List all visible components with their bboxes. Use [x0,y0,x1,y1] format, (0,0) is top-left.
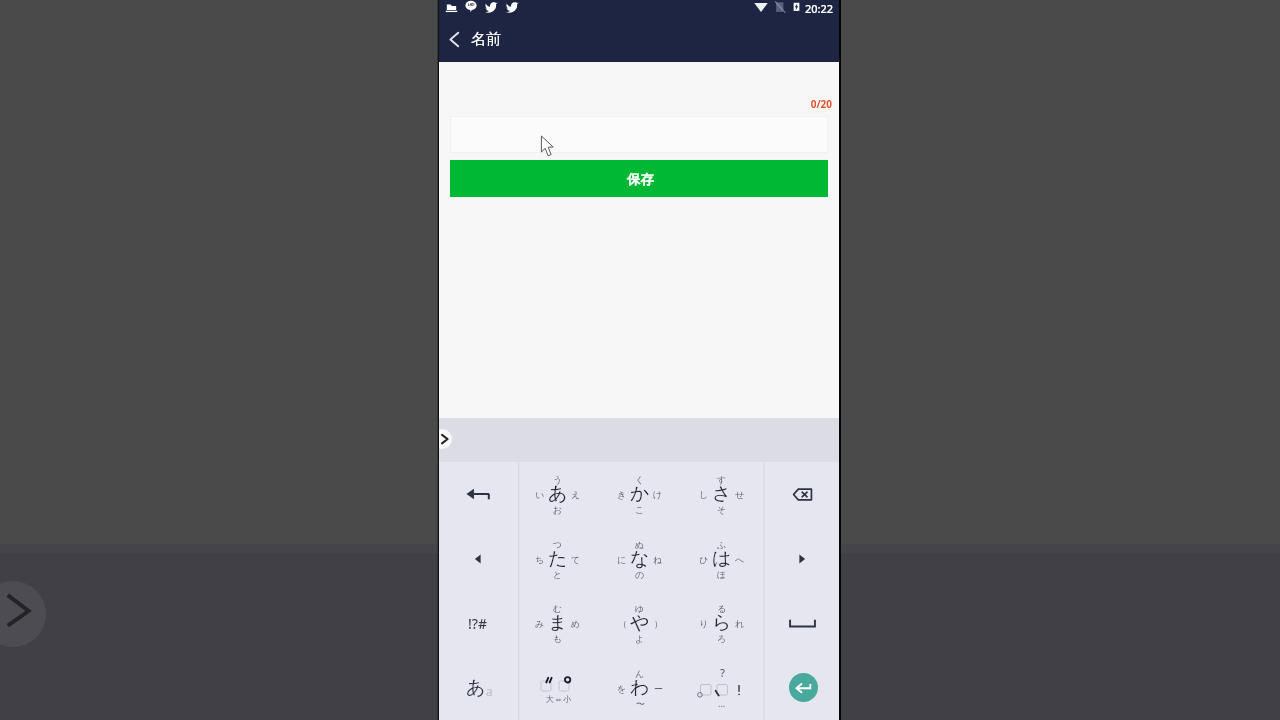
staticText: 大 [546,694,554,704]
staticText: ふ [717,539,727,550]
button[interactable]: Next [0,581,46,647]
staticText: き [617,489,627,500]
button[interactable]: !?# [439,591,517,655]
staticText: た [548,547,568,571]
staticText: に [617,554,627,565]
button[interactable] [450,116,828,153]
staticText: ね [653,554,663,565]
staticText: め [571,618,581,629]
button[interactable]: な [599,527,681,591]
staticText: を [617,683,627,694]
staticText: （ [618,618,627,629]
staticText: え [571,489,581,500]
button[interactable]: さ [681,462,763,526]
button[interactable]: Punctuation [681,656,763,720]
staticText: る [717,603,727,614]
staticText: む [553,603,563,614]
staticText: ... [718,697,726,709]
staticText: ひ [699,554,709,565]
staticText: う [553,474,563,485]
button[interactable]: Cursor right [763,527,839,591]
button[interactable]: あ [517,462,599,526]
button[interactable]: Back [439,23,471,55]
staticText: ゆ [635,603,645,614]
staticText: あ [548,482,568,506]
staticText: し [699,489,709,500]
staticText: み [535,618,545,629]
button[interactable]: Undo [439,462,517,526]
button[interactable]: か [599,462,681,526]
staticText: ぬ [635,539,645,550]
staticText: ） [654,618,663,629]
staticText: ん [635,668,645,679]
button[interactable]: Expand suggestions [439,429,452,449]
staticText: あ [466,676,486,700]
staticText: け [653,489,663,500]
staticText: や [630,611,650,635]
staticText: そ [717,504,727,515]
staticText: と [553,569,563,580]
button[interactable]: は [681,527,763,591]
staticText: り [699,618,709,629]
staticText: ? [720,665,725,680]
staticText: さ [712,482,732,506]
button[interactable]: わ [599,656,681,720]
staticText: ち [535,554,545,565]
staticText: 小 [563,694,571,704]
staticText: 0/20 [439,97,832,111]
staticText: ⇔ [554,695,563,704]
staticText: へ [735,554,745,565]
staticText: て [571,554,581,565]
staticText: 名前 [471,30,501,49]
staticText: ら [712,611,732,635]
staticText: ま [548,611,568,635]
button[interactable]: Space [763,591,839,655]
staticText: す [717,474,727,485]
staticText: つ [553,539,563,550]
button[interactable]: Enter [763,656,839,720]
button[interactable]: あ [439,656,517,720]
button[interactable]: Dakuten [517,656,599,720]
staticText: ほ [717,569,727,580]
staticText: 〜 [636,698,645,709]
button[interactable]: ら [681,591,763,655]
button[interactable]: Backspace [763,462,839,526]
staticText: れ [735,618,745,629]
staticText: わ [630,676,650,700]
button[interactable]: た [517,527,599,591]
button[interactable]: や [599,591,681,655]
staticText: も [553,633,563,644]
staticText: せ [735,489,745,500]
staticText: か [630,482,650,506]
staticText: ー [654,683,663,694]
staticText: よ [635,633,645,644]
staticText: !?# [468,614,488,633]
staticText: く [635,474,645,485]
staticText: の [635,569,645,580]
button[interactable]: ま [517,591,599,655]
button[interactable]: Cursor left [439,527,517,591]
staticText: お [553,504,563,515]
button[interactable]: 保存 [450,160,828,197]
staticText: こ [635,504,645,515]
staticText: い [535,489,545,500]
staticText: 20:22 [805,1,834,16]
staticText: a [486,683,493,699]
staticText: 保存 [627,171,654,188]
staticText: ろ [717,633,727,644]
staticText: は [712,547,732,571]
staticText: な [630,547,650,571]
